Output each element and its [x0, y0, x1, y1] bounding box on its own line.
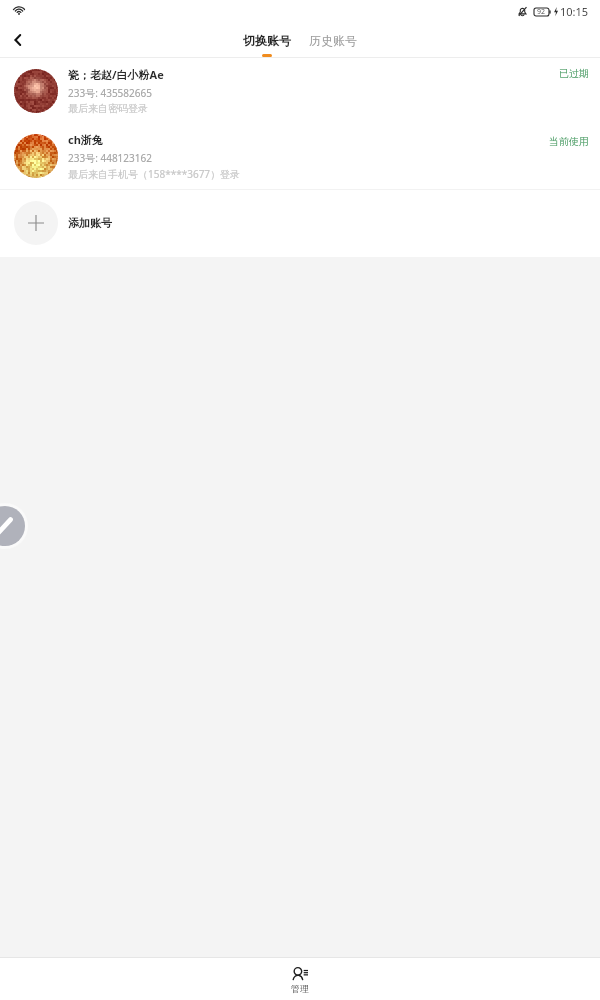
staticText: 10:15	[560, 4, 589, 19]
button[interactable]: 管理	[273, 958, 327, 996]
staticText: 瓷；老赵/白小粉Ae	[68, 67, 164, 82]
staticText: 最后来自密码登录	[68, 102, 148, 115]
button[interactable]: 切换账号	[235, 33, 299, 48]
staticText: 当前使用	[549, 135, 589, 148]
button[interactable]: Back	[0, 22, 35, 57]
button[interactable]: 瓷；老赵/白小粉Ae	[0, 58, 600, 123]
staticText: 切换账号	[243, 33, 291, 48]
staticText: ch浙兔	[68, 132, 103, 147]
button[interactable]: Edit	[0, 503, 28, 549]
button[interactable]: ch浙兔	[0, 123, 600, 189]
staticText: 管理	[291, 983, 309, 994]
staticText: 历史账号	[309, 33, 357, 48]
staticText: 添加账号	[68, 216, 112, 230]
staticText: 233号: 435582665	[68, 86, 152, 100]
button[interactable]: 添加账号	[0, 190, 600, 256]
staticText: 已过期	[559, 67, 589, 80]
staticText: 92	[537, 7, 546, 17]
button[interactable]: 历史账号	[301, 33, 365, 48]
staticText: 最后来自手机号（158****3677）登录	[68, 167, 241, 181]
staticText: 233号: 448123162	[68, 151, 152, 165]
